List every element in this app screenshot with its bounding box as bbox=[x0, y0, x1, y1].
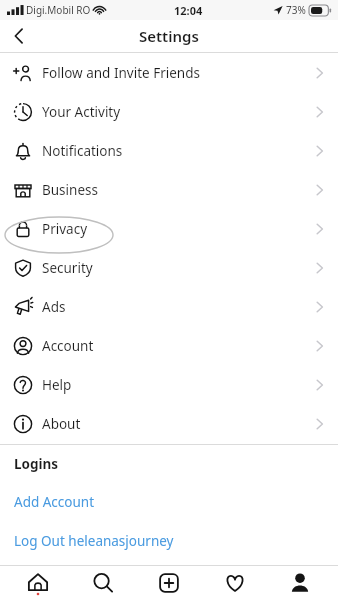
staticText: Add Account bbox=[14, 493, 95, 511]
staticText: Log Out heleanasjourney bbox=[14, 532, 174, 550]
button[interactable]: Security bbox=[0, 248, 338, 287]
button[interactable]: Add Account bbox=[0, 482, 338, 521]
staticText: Ads bbox=[42, 298, 66, 316]
staticText: Security bbox=[42, 259, 93, 277]
staticText: Digi.Mobil RO bbox=[26, 3, 91, 17]
button[interactable]: Profile bbox=[272, 566, 328, 600]
button[interactable]: Business bbox=[0, 170, 338, 209]
button[interactable]: Ads bbox=[0, 287, 338, 326]
staticText: Help bbox=[42, 376, 72, 394]
staticText: About bbox=[42, 415, 81, 433]
button[interactable]: Activity bbox=[207, 566, 263, 600]
staticText: Notifications bbox=[42, 142, 123, 160]
button[interactable]: Notifications bbox=[0, 131, 338, 170]
staticText: Account bbox=[42, 337, 94, 355]
button[interactable]: Your Activity bbox=[0, 92, 338, 131]
button[interactable]: Help bbox=[0, 365, 338, 404]
button[interactable]: Search bbox=[75, 566, 131, 600]
button[interactable]: Follow and Invite Friends bbox=[0, 53, 338, 92]
staticText: Privacy bbox=[42, 220, 88, 238]
staticText: Your Activity bbox=[42, 103, 121, 121]
staticText: 12:04 bbox=[174, 3, 203, 18]
button[interactable]: Account bbox=[0, 326, 338, 365]
staticText: Logins bbox=[14, 455, 59, 473]
button[interactable]: Home bbox=[10, 566, 66, 600]
staticText: Business bbox=[42, 181, 98, 199]
staticText: 73% bbox=[286, 3, 306, 17]
button[interactable]: About bbox=[0, 404, 338, 443]
staticText: Follow and Invite Friends bbox=[42, 64, 200, 82]
button[interactable]: Log Out heleanasjourney bbox=[0, 521, 338, 560]
button[interactable]: Back bbox=[0, 20, 38, 52]
button[interactable]: Privacy bbox=[0, 209, 338, 248]
staticText: Settings bbox=[139, 26, 199, 46]
button[interactable]: Create bbox=[141, 566, 197, 600]
